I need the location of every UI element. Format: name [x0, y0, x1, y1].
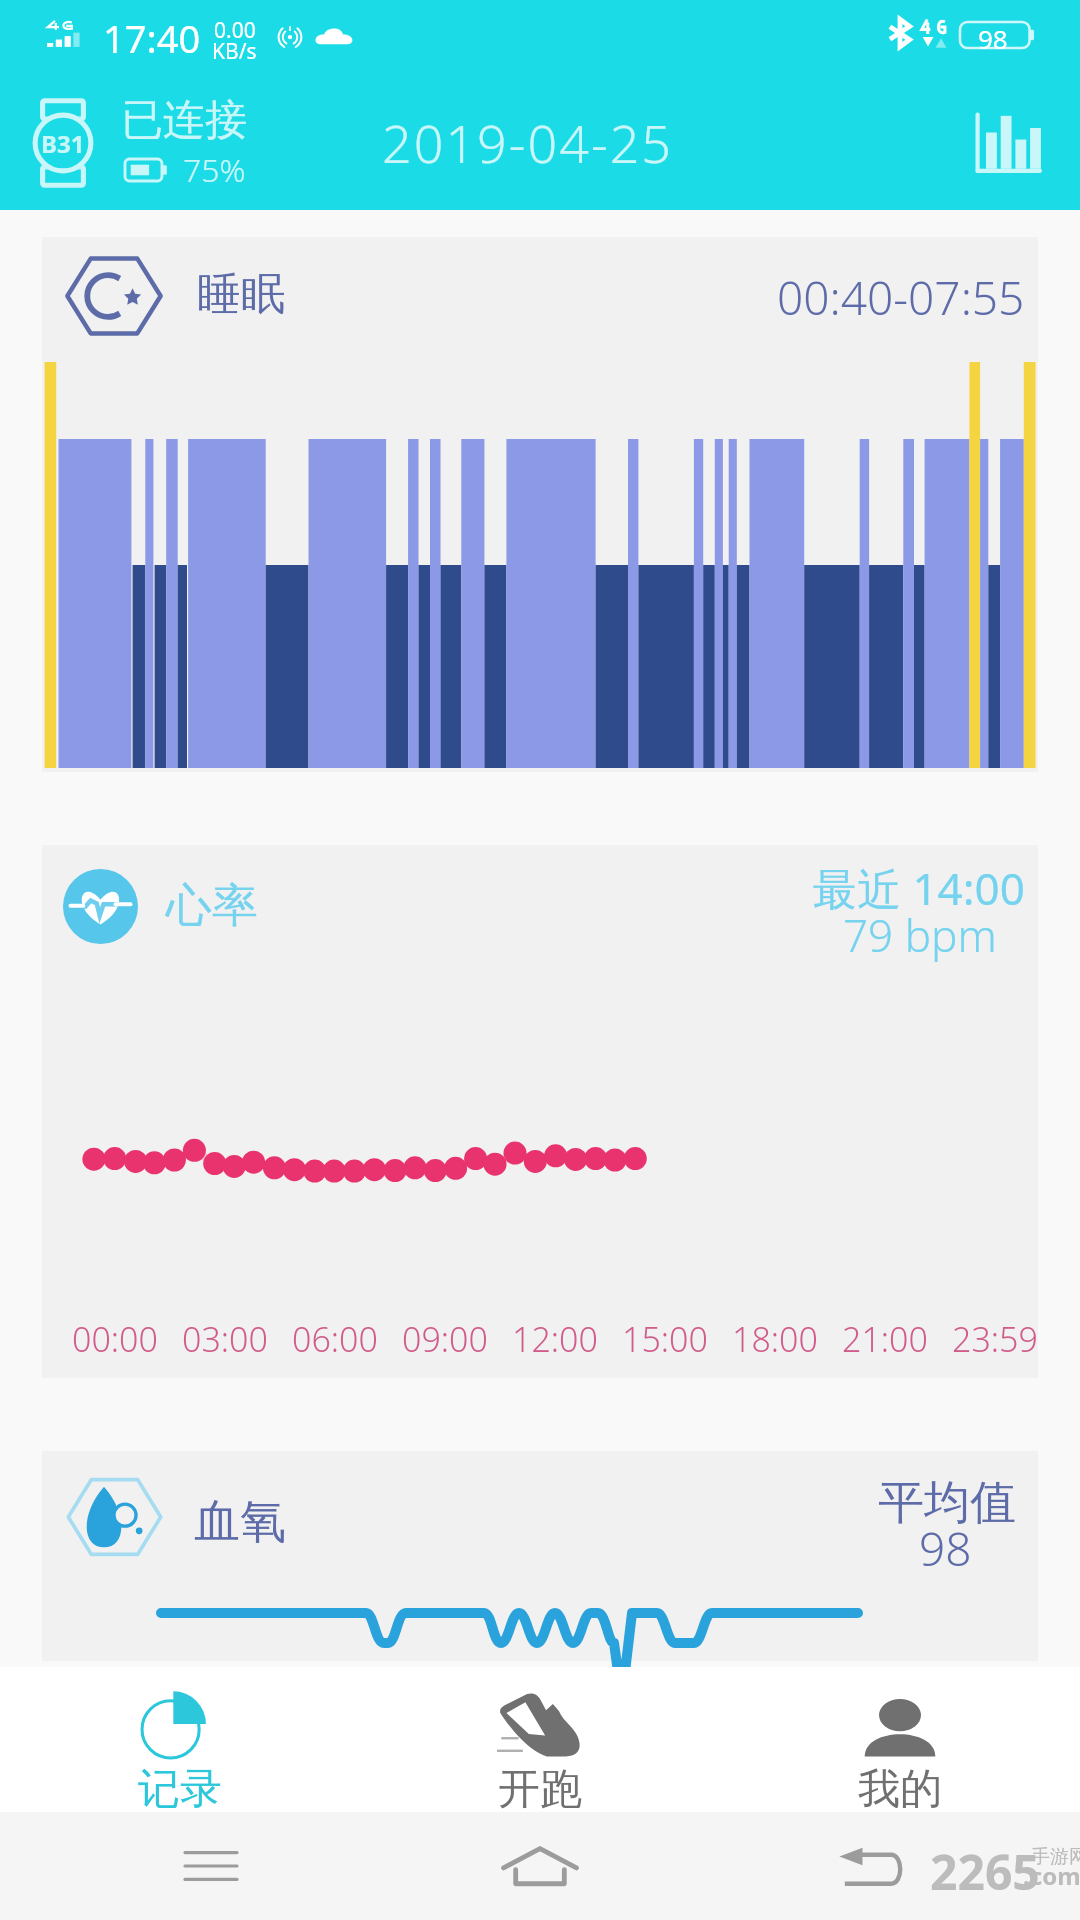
- staticText: KB/s: [212, 37, 257, 66]
- staticText: 我的: [858, 1763, 942, 1816]
- staticText: 已连接: [121, 94, 247, 147]
- staticText: 23:59: [952, 1316, 1038, 1362]
- staticText: 12:00: [512, 1316, 598, 1362]
- staticText: 心率: [166, 877, 258, 935]
- button[interactable]: Statistics: [959, 96, 1055, 192]
- button[interactable]: Recent apps: [0, 1812, 360, 1920]
- button[interactable]: Back: [790, 1812, 990, 1920]
- button[interactable]: 记录: [0, 1667, 360, 1812]
- staticText: 最近 14:00: [813, 858, 1025, 918]
- staticText: 17:40: [103, 12, 201, 64]
- staticText: 98: [978, 21, 1008, 56]
- button[interactable]: B31: [29, 94, 247, 192]
- button[interactable]: 我的: [720, 1667, 1080, 1812]
- button[interactable]: 心率: [42, 845, 1038, 1378]
- button[interactable]: Home: [360, 1812, 720, 1920]
- staticText: 00:40-07:55: [777, 266, 1025, 329]
- staticText: 2265: [930, 1839, 1040, 1904]
- staticText: 记录: [138, 1763, 222, 1816]
- staticText: 开跑: [498, 1763, 582, 1816]
- staticText: 00:00: [72, 1316, 158, 1362]
- staticText: 06:00: [292, 1316, 378, 1362]
- staticText: 平均值: [878, 1474, 1016, 1532]
- staticText: 75%: [183, 148, 246, 192]
- staticText: 睡眠: [197, 267, 285, 322]
- staticText: 0.00: [214, 16, 256, 45]
- button[interactable]: 血氧: [42, 1451, 1038, 1661]
- staticText: .com: [1023, 1859, 1080, 1892]
- staticText: 98: [919, 1517, 972, 1580]
- button[interactable]: 开跑: [360, 1667, 720, 1812]
- staticText: B31: [41, 127, 85, 160]
- staticText: 21:00: [842, 1316, 928, 1362]
- staticText: 09:00: [402, 1316, 488, 1362]
- staticText: 18:00: [732, 1316, 818, 1362]
- staticText: 15:00: [622, 1316, 708, 1362]
- button[interactable]: 睡眠: [42, 237, 1038, 772]
- staticText: 79 bpm: [843, 905, 997, 965]
- staticText: 血氧: [194, 1493, 286, 1551]
- staticText: 2019-04-25: [382, 107, 674, 178]
- staticText: 手游网: [1031, 1845, 1080, 1869]
- staticText: 03:00: [182, 1316, 268, 1362]
